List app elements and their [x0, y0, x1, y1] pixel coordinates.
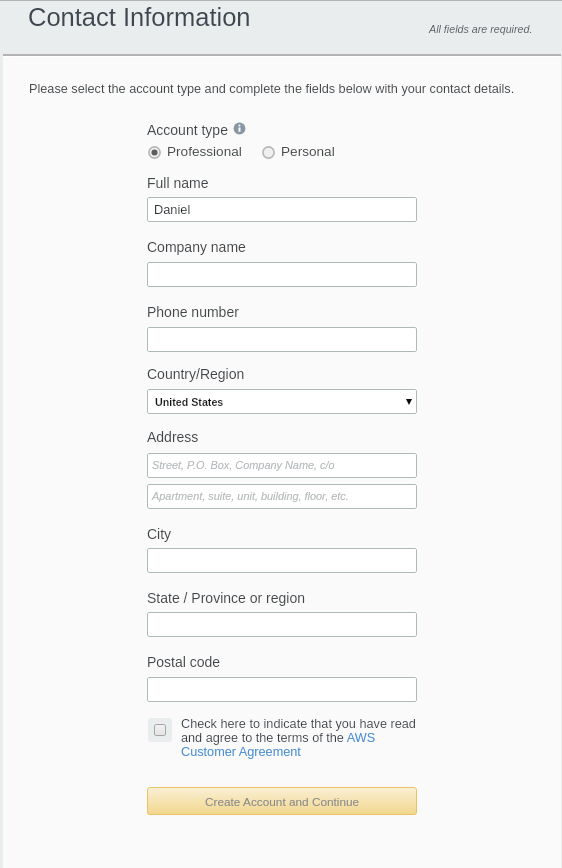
staticText: Phone number: [147, 304, 239, 320]
staticText: City: [147, 526, 172, 542]
button[interactable]: [147, 548, 417, 573]
staticText: Contact Information: [28, 3, 251, 31]
staticText: Street, P.O. Box, Company Name, c/o: [152, 459, 335, 471]
staticText: Company name: [147, 239, 246, 255]
button[interactable]: United States: [147, 389, 417, 414]
staticText: Create Account and Continue: [205, 795, 360, 808]
button[interactable]: [147, 677, 417, 702]
button[interactable]: Agree to the AWS Customer Agreement: [148, 718, 172, 742]
button[interactable]: More information about account type: [233, 122, 246, 135]
button[interactable]: [147, 262, 417, 287]
staticText: Country/Region: [147, 366, 245, 382]
staticText: Full name: [147, 175, 209, 191]
button[interactable]: [147, 327, 417, 352]
button[interactable]: Apartment, suite, unit, building, floor,…: [147, 484, 417, 509]
staticText: Check here to indicate that you have rea…: [181, 717, 419, 759]
staticText: Account type: [147, 122, 228, 138]
button[interactable]: Professional: [148, 145, 240, 160]
staticText: Address: [147, 429, 199, 445]
button[interactable]: [147, 612, 417, 637]
button[interactable]: Personal: [262, 145, 330, 160]
staticText: Please select the account type and compl…: [29, 82, 515, 96]
staticText: Apartment, suite, unit, building, floor,…: [152, 490, 349, 502]
staticText: Postal code: [147, 654, 221, 670]
staticText: Daniel: [154, 202, 191, 216]
button[interactable]: Street, P.O. Box, Company Name, c/o: [147, 453, 417, 478]
staticText: United States: [155, 396, 224, 408]
staticText: Professional: [167, 144, 242, 159]
staticText: State / Province or region: [147, 590, 305, 606]
button[interactable]: Create Account and Continue: [147, 787, 417, 815]
button[interactable]: Daniel: [147, 197, 417, 222]
staticText: Personal: [281, 144, 335, 159]
staticText: All fields are required.: [429, 23, 533, 35]
